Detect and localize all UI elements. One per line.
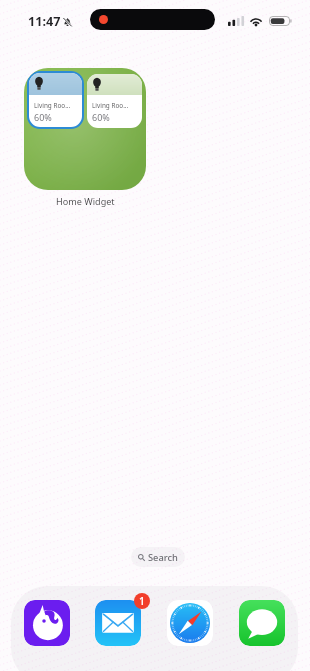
staticText: 60% [92,111,110,123]
button[interactable]: Safari [167,600,213,646]
button[interactable]: Living Roo... [24,68,146,190]
staticText: 60% [34,111,52,123]
staticText: 11:47 [28,13,61,30]
button[interactable]: Living Roo... [87,74,142,128]
button[interactable]: Mail [95,600,141,646]
staticText: Home Widget [56,195,115,207]
button[interactable]: Living Roo... [29,73,82,127]
button[interactable]: Search [131,547,185,567]
button[interactable]: Messages [239,600,285,646]
staticText: Living Roo... [92,101,129,110]
button[interactable]: Music [24,600,70,646]
staticText: Living Roo... [34,101,71,110]
staticText: 1 [139,594,146,608]
staticText: Search [148,551,178,564]
